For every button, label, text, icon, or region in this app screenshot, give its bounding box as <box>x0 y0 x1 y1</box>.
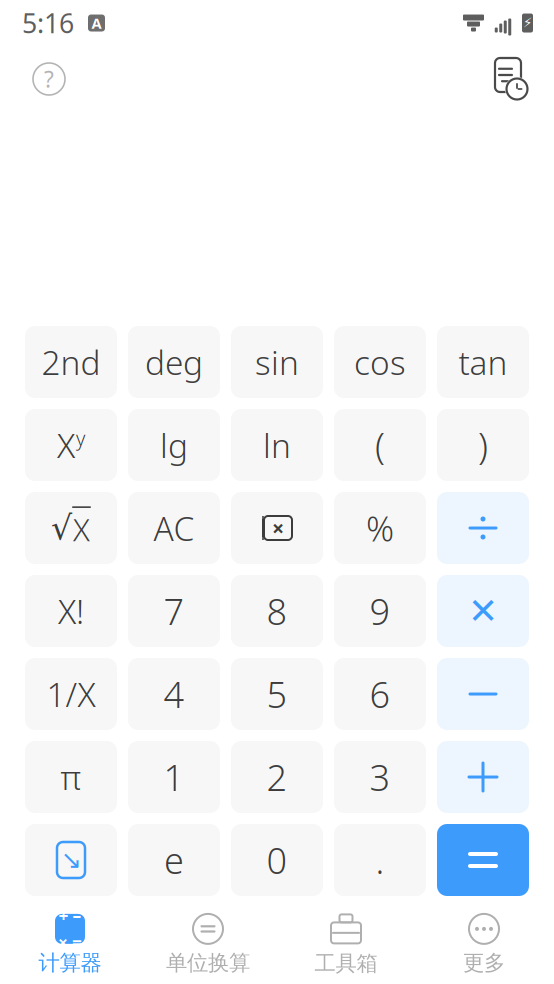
staticText: ✕ <box>468 591 498 631</box>
staticText: × <box>58 931 68 954</box>
button[interactable]: ( <box>334 409 426 481</box>
staticText: 0 <box>266 836 287 884</box>
button[interactable]: 5 <box>231 658 323 730</box>
staticText: X <box>73 509 90 550</box>
button[interactable]: History <box>482 53 534 105</box>
staticText: cos <box>354 340 406 384</box>
staticText: π <box>60 755 81 799</box>
staticText: 6 <box>369 670 390 718</box>
button[interactable]: Insert <box>25 824 117 896</box>
staticText: 8 <box>266 587 287 635</box>
button[interactable]: AC <box>128 492 220 564</box>
button[interactable]: 8 <box>231 575 323 647</box>
staticText: ( <box>375 421 385 469</box>
staticText: lg <box>160 423 188 467</box>
button[interactable]: 2nd <box>25 326 117 398</box>
button[interactable]: sin <box>231 326 323 398</box>
staticText: e <box>164 836 184 884</box>
staticText: tan <box>458 340 507 384</box>
button[interactable]: ) <box>437 409 529 481</box>
button[interactable]: + <box>1 908 139 982</box>
button[interactable]: π <box>25 741 117 813</box>
button[interactable]: lg <box>128 409 220 481</box>
staticText: 计算器 <box>38 950 101 976</box>
staticText: 1/X <box>46 672 95 716</box>
staticText: ⚡︎ <box>523 15 532 30</box>
button[interactable]: ln <box>231 409 323 481</box>
button[interactable]: 1 <box>128 741 220 813</box>
button[interactable]: 9 <box>334 575 426 647</box>
button[interactable]: 6 <box>334 658 426 730</box>
staticText: 5 <box>266 670 287 718</box>
staticText: 1 <box>163 753 184 801</box>
staticText: 工具箱 <box>314 950 377 977</box>
button[interactable]: Backspace <box>231 492 323 564</box>
staticText: + <box>58 904 68 927</box>
button[interactable]: % <box>334 492 426 564</box>
button[interactable]: X! <box>25 575 117 647</box>
staticText: ? <box>44 64 54 94</box>
staticText: = <box>72 931 82 954</box>
staticText: 4 <box>163 670 184 718</box>
staticText: ↘ <box>60 846 81 874</box>
button[interactable]: 2 <box>231 741 323 813</box>
staticText: 5:16 <box>22 5 74 41</box>
staticText: X <box>57 423 75 467</box>
button[interactable]: . <box>334 824 426 896</box>
staticText: – <box>72 904 81 927</box>
staticText: 3 <box>369 753 390 801</box>
button[interactable]: 3 <box>334 741 426 813</box>
staticText: 单位换算 <box>166 950 250 976</box>
staticText: 2nd <box>41 340 100 384</box>
button[interactable]: e <box>128 824 220 896</box>
button[interactable]: 更多 <box>415 908 553 982</box>
staticText: sin <box>255 340 299 384</box>
button[interactable]: Divide <box>437 492 529 564</box>
staticText: 2 <box>266 753 287 801</box>
staticText: 更多 <box>463 950 505 976</box>
button[interactable]: tan <box>437 326 529 398</box>
staticText: . <box>375 836 384 884</box>
button[interactable]: 0 <box>231 824 323 896</box>
staticText: × <box>272 514 284 542</box>
button[interactable]: 工具箱 <box>277 908 415 982</box>
staticText: ln <box>263 423 291 467</box>
button[interactable]: Multiply <box>437 575 529 647</box>
staticText: AC <box>153 506 194 550</box>
staticText: √ <box>51 509 72 547</box>
staticText: 7 <box>163 587 184 635</box>
staticText: A <box>91 13 101 33</box>
staticText: ) <box>478 421 488 469</box>
button[interactable]: Square root <box>25 492 117 564</box>
staticText: X! <box>58 589 84 633</box>
staticText: 9 <box>369 587 390 635</box>
button[interactable]: Help <box>26 56 72 102</box>
button[interactable]: Equals <box>437 824 529 896</box>
button[interactable]: X to the power of y <box>25 409 117 481</box>
staticText: deg <box>145 340 203 384</box>
button[interactable]: Minus <box>437 658 529 730</box>
staticText: y <box>76 425 85 451</box>
button[interactable]: 7 <box>128 575 220 647</box>
button[interactable]: 单位换算 <box>139 908 277 982</box>
button[interactable]: deg <box>128 326 220 398</box>
staticText: % <box>366 505 394 551</box>
button[interactable]: 4 <box>128 658 220 730</box>
button[interactable]: Plus <box>437 741 529 813</box>
button[interactable]: cos <box>334 326 426 398</box>
button[interactable]: 1/X <box>25 658 117 730</box>
